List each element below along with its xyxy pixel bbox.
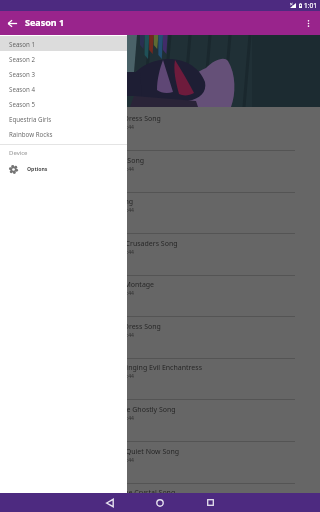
staticText: Becoming Popular Montage xyxy=(62,280,155,290)
staticText: Season 2 xyxy=(9,55,36,63)
staticText: Winter Wrap Up Song xyxy=(73,156,145,166)
staticText: 2:44 xyxy=(124,373,134,380)
staticText: Season 5 xyxy=(9,100,36,108)
staticText: Rainbow Rocks xyxy=(9,130,53,138)
staticText: 2:44 xyxy=(124,124,134,131)
button[interactable]: Hush Now Quiet Now Song xyxy=(0,442,320,484)
staticText: 2:44 xyxy=(124,332,134,339)
button[interactable]: Season 1 xyxy=(0,36,127,51)
button[interactable]: Ballad of the Crystal Song xyxy=(0,483,320,512)
staticText: 2:44 xyxy=(124,207,134,214)
button[interactable]: More options xyxy=(296,11,320,35)
button[interactable]: Equestria Girls xyxy=(0,111,127,126)
button[interactable]: Recent apps xyxy=(201,493,220,512)
staticText: 1:01 xyxy=(304,1,317,10)
staticText: Device xyxy=(9,149,28,157)
staticText: Season 3 xyxy=(9,70,36,78)
staticText: Hush Now Quiet Now Song xyxy=(90,447,180,457)
staticText: Season 1 xyxy=(25,16,65,28)
button[interactable]: Pinkie Pie Singing Evil Enchantress xyxy=(0,358,320,400)
staticText: Options xyxy=(27,165,48,172)
staticText: 2:44 xyxy=(124,415,134,422)
staticText: Cutie Mark Crusaders Song xyxy=(88,239,178,249)
button[interactable]: Home xyxy=(150,493,169,512)
button[interactable]: Season 5 xyxy=(0,96,127,111)
staticText: 2:44 xyxy=(124,290,134,297)
button[interactable]: Art of the Dress Song xyxy=(0,317,320,359)
staticText: Art of the Dress Song xyxy=(91,114,161,124)
staticText: 2:44 xyxy=(124,166,134,173)
staticText: Equestria Girls xyxy=(9,115,52,123)
button[interactable]: Hop Skip and Jump Song xyxy=(0,192,320,234)
button[interactable]: Options xyxy=(0,160,127,179)
staticText: Hop Skip and Jump Song xyxy=(52,197,134,207)
button[interactable]: Cutie Mark Crusaders Song xyxy=(0,234,320,276)
button[interactable]: Winter Wrap Up Song xyxy=(0,151,320,193)
staticText: Season 1 xyxy=(9,40,36,48)
staticText: 2:44 xyxy=(124,457,134,464)
button[interactable]: Ballad of the Ghostly Song xyxy=(0,400,320,442)
button[interactable]: Rainbow Rocks xyxy=(0,126,127,141)
staticText: Pinkie Pie Singing Evil Enchantress xyxy=(89,363,202,373)
staticText: Ballad of the Ghostly Song xyxy=(89,405,176,415)
button[interactable]: Navigate up xyxy=(0,11,24,35)
button[interactable]: Season 2 xyxy=(0,51,127,66)
button[interactable]: Back xyxy=(100,493,119,512)
button[interactable]: Season 4 xyxy=(0,81,127,96)
button[interactable]: Art of the Dress Song xyxy=(0,109,320,151)
button[interactable]: Becoming Popular Montage xyxy=(0,275,320,317)
staticText: Season 4 xyxy=(9,85,36,93)
button[interactable]: Season 3 xyxy=(0,66,127,81)
staticText: Art of the Dress Song xyxy=(91,322,161,332)
staticText: 2:44 xyxy=(124,249,134,256)
staticText: Ballad of the Crystal Song xyxy=(91,488,176,498)
